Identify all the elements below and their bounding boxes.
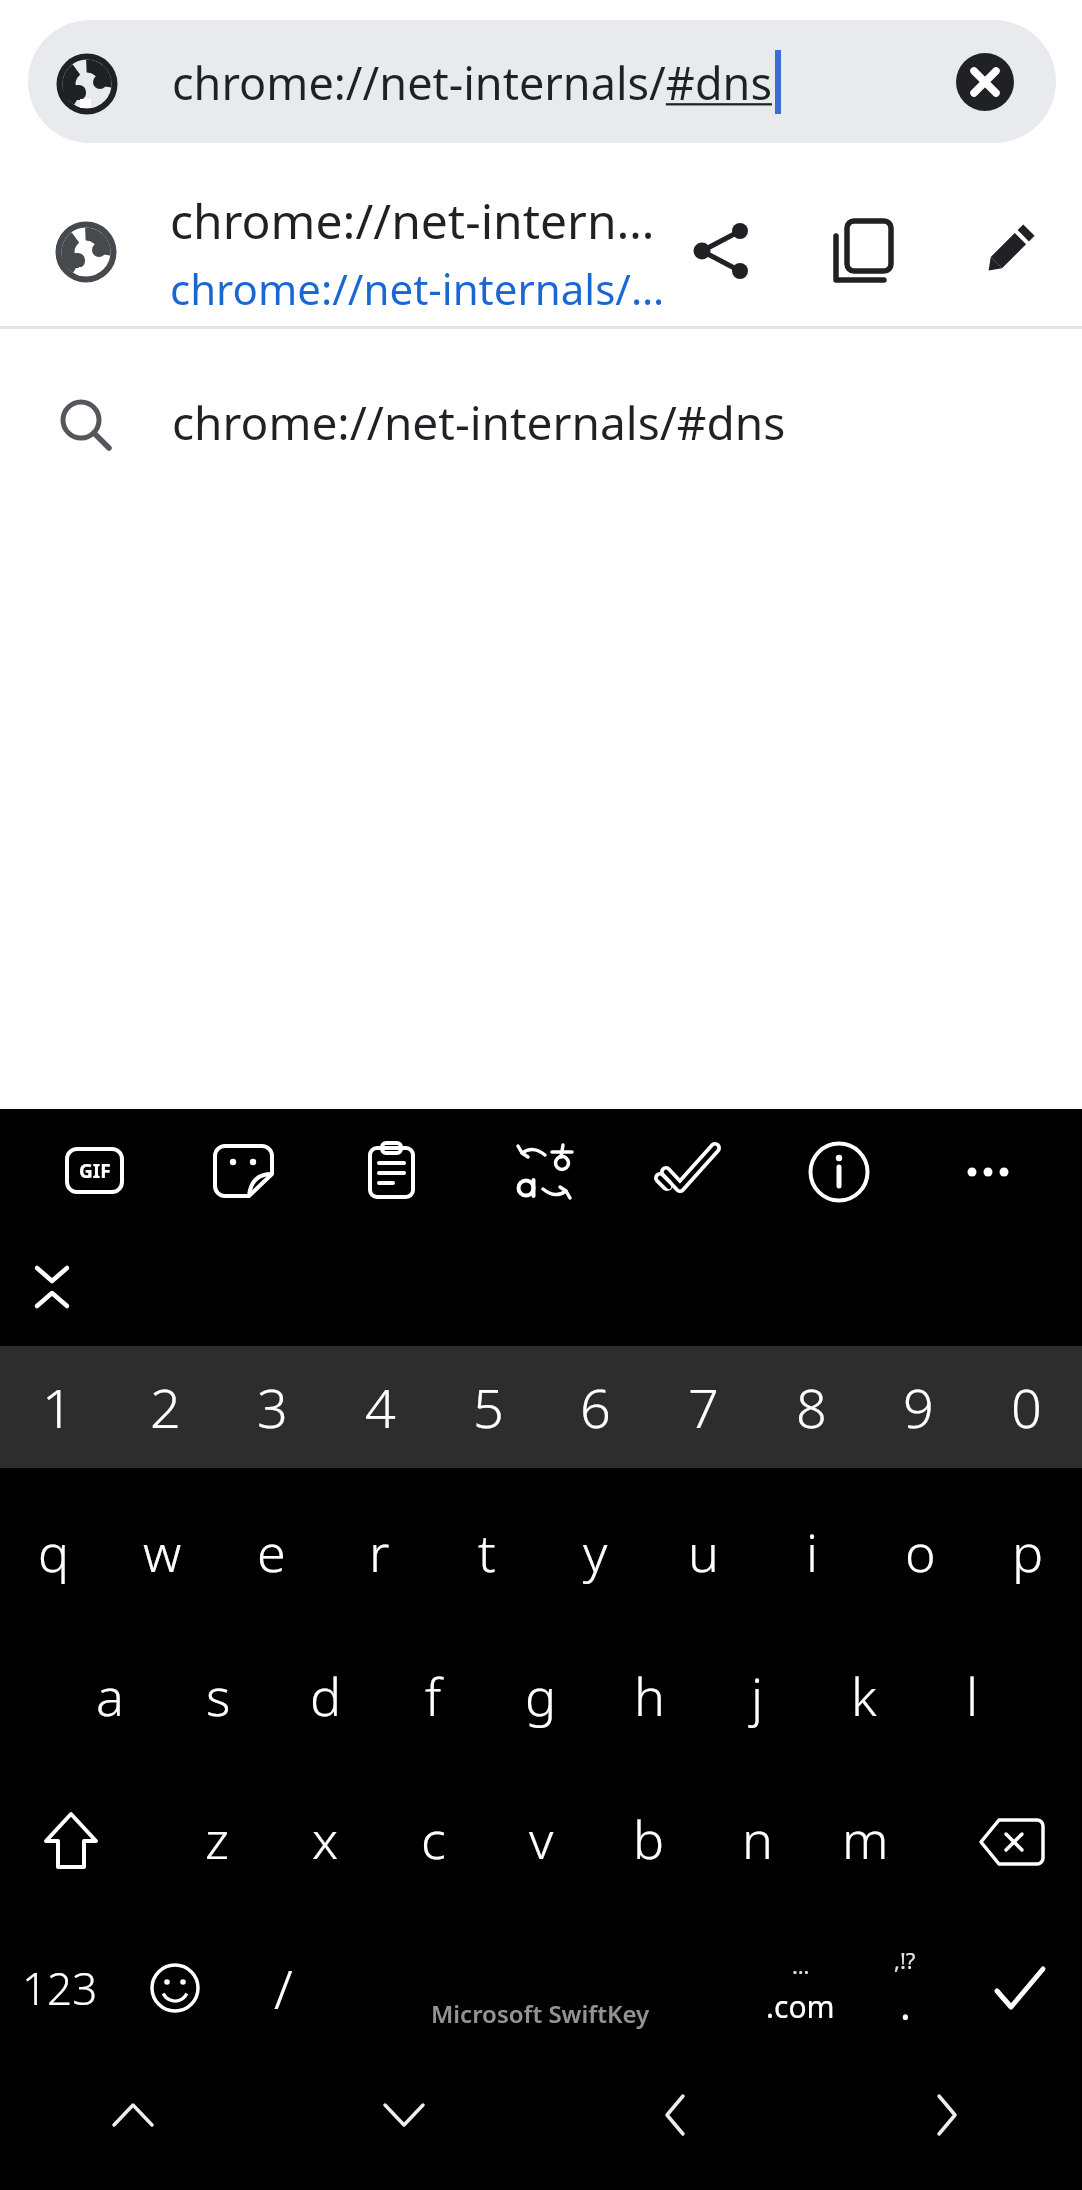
- button[interactable]: g: [487, 1622, 595, 1768]
- button[interactable]: [515, 1143, 575, 1201]
- staticText: chrome://net-internals/…: [170, 260, 665, 310]
- button[interactable]: [808, 1141, 870, 1203]
- button[interactable]: n: [703, 1765, 811, 1911]
- button[interactable]: [689, 219, 753, 283]
- button[interactable]: m: [811, 1765, 919, 1911]
- button[interactable]: [975, 220, 1039, 284]
- staticText: GIF: [79, 1158, 111, 1184]
- button[interactable]: 0: [972, 1346, 1080, 1468]
- button[interactable]: 1: [3, 1346, 111, 1468]
- button[interactable]: 6: [541, 1346, 649, 1468]
- staticText: s: [206, 1660, 231, 1731]
- staticText: b: [633, 1803, 665, 1874]
- button[interactable]: [350, 2061, 458, 2169]
- staticText: v: [529, 1803, 554, 1874]
- staticText: .com: [766, 1986, 835, 2027]
- button[interactable]: [956, 1769, 1068, 1915]
- button[interactable]: 9: [864, 1346, 972, 1468]
- button[interactable]: e: [217, 1478, 325, 1624]
- button[interactable]: [0, 329, 1082, 499]
- button[interactable]: w: [108, 1478, 216, 1624]
- button[interactable]: o: [866, 1478, 974, 1624]
- button[interactable]: [121, 1915, 229, 2061]
- button[interactable]: [621, 2061, 729, 2169]
- staticText: n: [742, 1803, 773, 1874]
- button[interactable]: y: [541, 1478, 649, 1624]
- button[interactable]: 5: [434, 1346, 542, 1468]
- button[interactable]: q: [0, 1478, 108, 1624]
- button[interactable]: s: [164, 1622, 272, 1768]
- staticText: w: [143, 1516, 182, 1587]
- staticText: 8: [796, 1370, 827, 1444]
- button[interactable]: [832, 219, 896, 283]
- staticText: ,!?: [894, 1945, 916, 1975]
- staticText: …: [792, 1950, 810, 1980]
- staticText: e: [257, 1516, 286, 1587]
- button[interactable]: 3: [218, 1346, 326, 1468]
- button[interactable]: 8: [757, 1346, 865, 1468]
- staticText: f: [425, 1660, 442, 1731]
- button[interactable]: x: [271, 1765, 379, 1911]
- staticText: t: [478, 1516, 496, 1587]
- staticText: k: [851, 1660, 877, 1731]
- staticText: chrome://net-internals/#dns: [172, 391, 786, 454]
- staticText: d: [310, 1660, 342, 1731]
- button[interactable]: b: [595, 1765, 703, 1911]
- staticText: 5: [473, 1370, 504, 1444]
- staticText: j: [751, 1660, 764, 1731]
- staticText: 1: [42, 1370, 73, 1444]
- button[interactable]: 123: [6, 1915, 114, 2061]
- button[interactable]: [658, 1140, 722, 1196]
- button[interactable]: [959, 1915, 1079, 2061]
- button[interactable]: c: [379, 1765, 487, 1911]
- button[interactable]: 7: [649, 1346, 757, 1468]
- staticText: m: [842, 1803, 889, 1874]
- button[interactable]: t: [433, 1478, 541, 1624]
- button[interactable]: /: [229, 1915, 337, 2061]
- button[interactable]: [24, 1255, 80, 1317]
- staticText: .: [900, 1977, 911, 2031]
- button[interactable]: u: [649, 1478, 757, 1624]
- button[interactable]: [213, 1144, 274, 1198]
- staticText: o: [905, 1516, 936, 1587]
- button[interactable]: i: [758, 1478, 866, 1624]
- button[interactable]: [956, 1158, 1020, 1186]
- button[interactable]: v: [487, 1765, 595, 1911]
- button[interactable]: [956, 53, 1014, 111]
- button[interactable]: r: [325, 1478, 433, 1624]
- staticText: 6: [580, 1370, 611, 1444]
- button[interactable]: j: [703, 1622, 811, 1768]
- button[interactable]: Microsoft SwiftKey: [337, 1915, 743, 2061]
- button[interactable]: k: [810, 1622, 918, 1768]
- staticText: chrome://net-internals/#dns: [172, 52, 772, 113]
- staticText: 7: [688, 1370, 719, 1444]
- staticText: q: [38, 1516, 70, 1587]
- button[interactable]: [28, 20, 1056, 143]
- button[interactable]: [893, 2061, 1001, 2169]
- button[interactable]: [368, 1141, 415, 1199]
- button[interactable]: z: [163, 1765, 271, 1911]
- button[interactable]: [17, 1769, 125, 1915]
- staticText: y: [583, 1516, 608, 1587]
- button[interactable]: …: [746, 1915, 854, 2061]
- button[interactable]: GIF: [65, 1147, 124, 1194]
- button[interactable]: l: [918, 1622, 1026, 1768]
- button[interactable]: ,!?: [851, 1915, 959, 2061]
- staticText: 123: [22, 1958, 98, 2018]
- button[interactable]: [0, 166, 1082, 326]
- button[interactable]: 2: [111, 1346, 219, 1468]
- staticText: /: [274, 1951, 293, 2025]
- button[interactable]: f: [379, 1622, 487, 1768]
- staticText: r: [369, 1516, 390, 1587]
- button[interactable]: d: [272, 1622, 380, 1768]
- button[interactable]: 4: [326, 1346, 434, 1468]
- staticText: Microsoft SwiftKey: [431, 1997, 650, 2030]
- staticText: 2: [150, 1370, 181, 1444]
- staticText: p: [1012, 1516, 1044, 1587]
- staticText: 3: [257, 1370, 288, 1444]
- button[interactable]: [79, 2061, 187, 2169]
- staticText: 4: [365, 1370, 396, 1444]
- button[interactable]: a: [56, 1622, 164, 1768]
- button[interactable]: p: [974, 1478, 1082, 1624]
- button[interactable]: h: [595, 1622, 703, 1768]
